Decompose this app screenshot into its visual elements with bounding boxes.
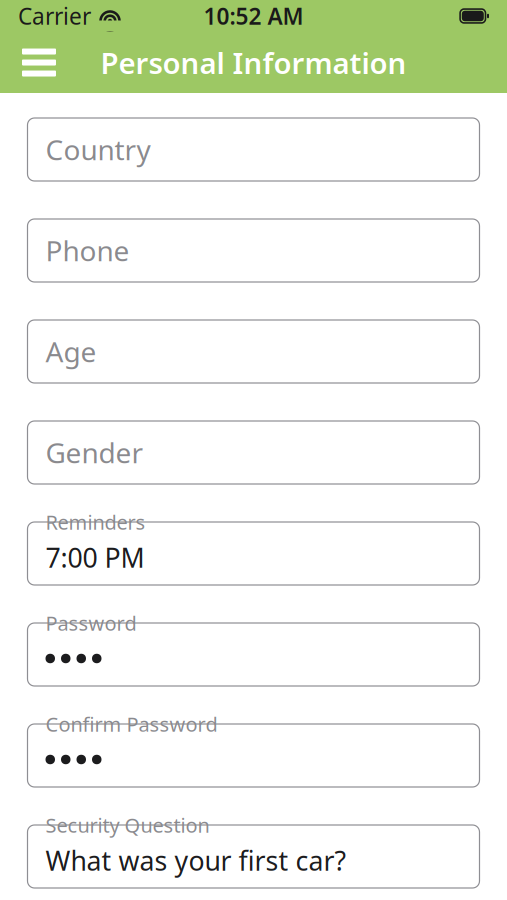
- button[interactable]: Security Question: [27, 825, 479, 888]
- staticText: Security Question: [45, 812, 209, 838]
- staticText: Gender: [45, 434, 143, 471]
- staticText: Personal Information: [100, 43, 406, 82]
- staticText: Password: [45, 610, 136, 636]
- staticText: What was your first car?: [45, 843, 346, 878]
- staticText: Carrier: [18, 1, 91, 31]
- staticText: Age: [45, 333, 96, 370]
- button[interactable]: Password: [27, 623, 479, 686]
- button[interactable]: Age: [27, 320, 479, 383]
- staticText: Confirm Password: [45, 711, 217, 737]
- staticText: Reminders: [45, 509, 145, 535]
- button[interactable]: Phone: [27, 219, 479, 282]
- staticText: Country: [45, 131, 150, 168]
- staticText: 7:00 PM: [45, 540, 144, 575]
- button[interactable]: Menu: [12, 40, 66, 84]
- button[interactable]: Gender: [27, 421, 479, 484]
- button[interactable]: Country: [27, 118, 479, 181]
- staticText: Phone: [45, 232, 129, 269]
- button[interactable]: Reminders: [27, 522, 479, 585]
- button[interactable]: Confirm Password: [27, 724, 479, 787]
- staticText: 10:52 AM: [203, 1, 303, 31]
